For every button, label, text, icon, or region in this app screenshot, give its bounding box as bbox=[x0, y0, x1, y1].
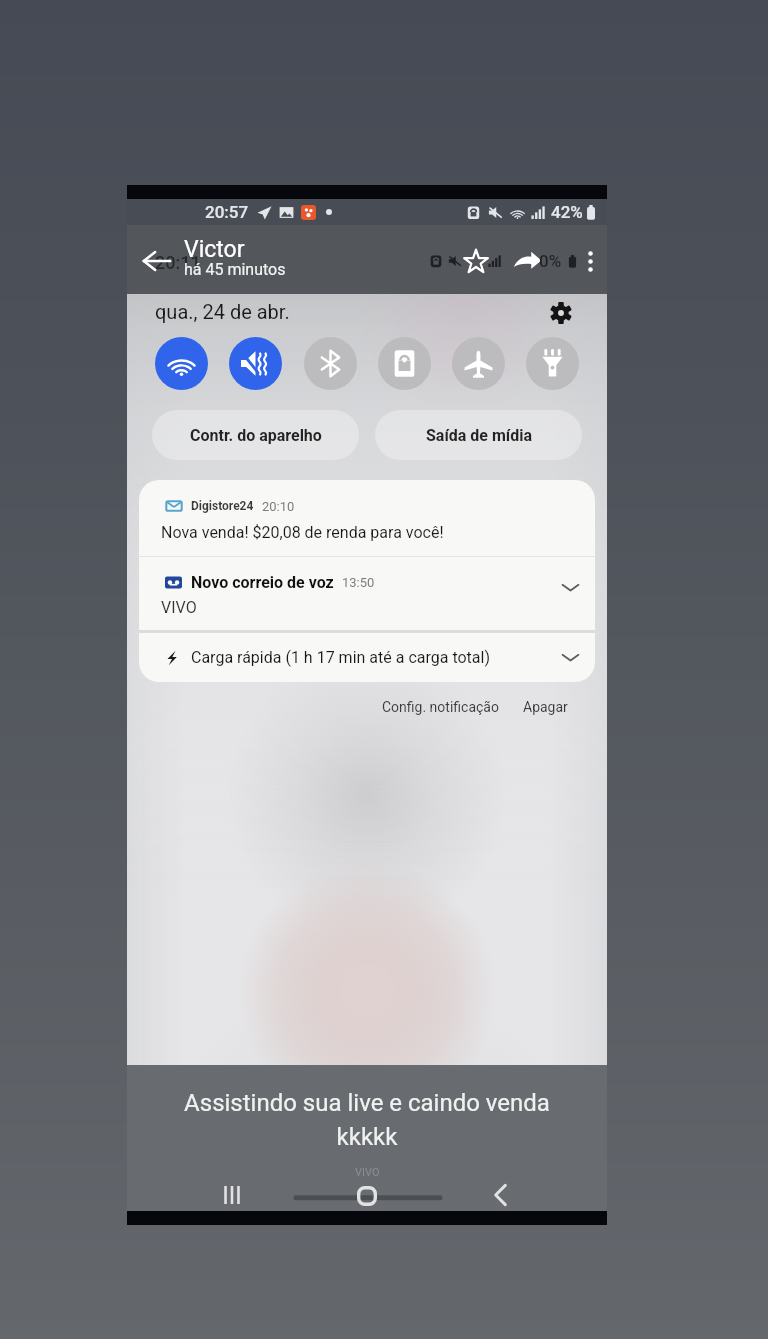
button[interactable]: Contr. do aparelho bbox=[152, 410, 359, 460]
button[interactable]: Home bbox=[350, 1179, 384, 1212]
staticText: 42% bbox=[551, 202, 583, 222]
staticText: 20:10 bbox=[262, 499, 295, 514]
staticText: qua., 24 de abr. bbox=[155, 300, 290, 323]
button[interactable]: Back bbox=[483, 1178, 517, 1211]
button[interactable]: Saída de mídia bbox=[375, 410, 582, 460]
staticText: 0% bbox=[539, 251, 562, 271]
button[interactable]: Favorite bbox=[461, 246, 491, 276]
staticText: Saída de mídia bbox=[426, 426, 532, 445]
button[interactable]: Quick setting bbox=[452, 337, 505, 390]
button[interactable]: Back bbox=[142, 246, 172, 276]
staticText: Victor bbox=[184, 236, 245, 263]
staticText: Assistindo sua live e caindo venda kkkkk bbox=[184, 1089, 550, 1151]
button[interactable]: More options bbox=[577, 248, 603, 274]
button[interactable]: Quick setting bbox=[378, 337, 431, 390]
staticText: Apagar bbox=[523, 699, 568, 715]
staticText: Novo correio de voz bbox=[191, 573, 334, 592]
button[interactable]: Apagar bbox=[520, 696, 571, 718]
staticText: Digistore24 bbox=[191, 499, 254, 513]
button[interactable]: Config. notificação bbox=[379, 696, 502, 718]
button[interactable]: Quick setting bbox=[304, 337, 357, 390]
button[interactable]: Quick setting bbox=[155, 337, 208, 390]
staticText: Contr. do aparelho bbox=[190, 426, 322, 445]
staticText: 20:11 bbox=[155, 252, 201, 273]
button[interactable]: Quick setting bbox=[229, 337, 282, 390]
button[interactable]: Quick setting bbox=[526, 337, 579, 390]
staticText: VIVO bbox=[161, 598, 197, 617]
button[interactable]: Share bbox=[509, 243, 545, 279]
staticText: VIVO bbox=[355, 1166, 380, 1179]
staticText: Config. notificação bbox=[382, 699, 499, 715]
button[interactable]: Recents bbox=[215, 1178, 249, 1211]
staticText: Carga rápida (1 h 17 min até a carga tot… bbox=[191, 648, 490, 667]
staticText: há 45 minutos bbox=[184, 260, 286, 279]
staticText: 20:57 bbox=[205, 202, 249, 222]
button[interactable]: Novo correio de voz bbox=[139, 557, 595, 630]
button[interactable]: Carga rápida (1 h 17 min até a carga tot… bbox=[139, 633, 595, 682]
button[interactable]: Settings bbox=[544, 296, 577, 329]
staticText: 13:50 bbox=[342, 575, 375, 590]
staticText: Nova venda! $20,08 de renda para você! bbox=[161, 523, 444, 542]
button[interactable]: Digistore24 bbox=[139, 480, 595, 556]
